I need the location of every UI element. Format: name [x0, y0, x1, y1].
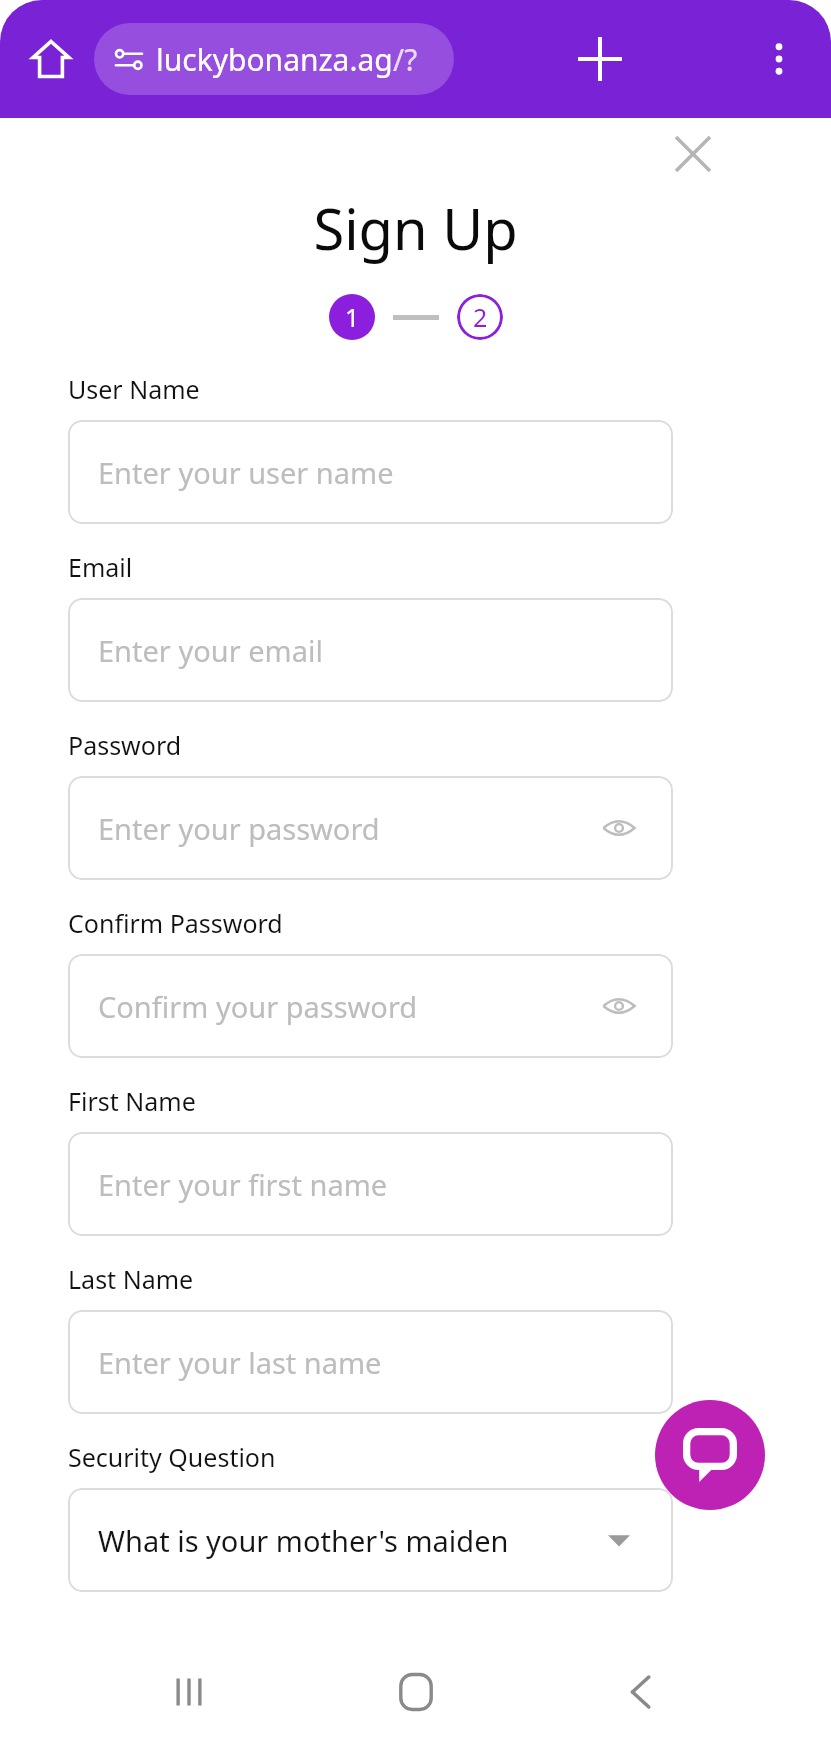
- button[interactable]: Home: [20, 28, 82, 90]
- staticText: Security Question: [68, 1440, 276, 1474]
- button[interactable]: Recents: [152, 1655, 226, 1729]
- staticText: Enter your user name: [98, 453, 394, 492]
- staticText: First Name: [68, 1084, 196, 1118]
- staticText: Email: [68, 550, 133, 584]
- button[interactable]: Enter your first name: [68, 1132, 673, 1236]
- staticText: 1: [345, 300, 360, 334]
- staticText: Confirm your password: [98, 987, 418, 1026]
- button[interactable]: Close: [665, 126, 721, 182]
- button[interactable]: Enter your password: [68, 776, 673, 880]
- button[interactable]: What is your mother's maiden name?: [68, 1488, 673, 1592]
- staticText: Password: [68, 728, 182, 762]
- button[interactable]: Show password: [595, 804, 643, 852]
- staticText: Enter your email: [98, 631, 323, 670]
- button[interactable]: luckybonanza.ag: [94, 23, 454, 95]
- button[interactable]: Enter your email: [68, 598, 673, 702]
- staticText: Enter your last name: [98, 1343, 382, 1382]
- button[interactable]: Home: [379, 1655, 453, 1729]
- staticText: Enter your password: [98, 809, 380, 848]
- staticText: Confirm Password: [68, 906, 283, 940]
- button[interactable]: Enter your last name: [68, 1310, 673, 1414]
- staticText: Enter your first name: [98, 1165, 388, 1204]
- button[interactable]: Back: [605, 1655, 679, 1729]
- button[interactable]: Show password: [595, 982, 643, 1030]
- staticText: /?id: [393, 39, 440, 80]
- button[interactable]: Enter your user name: [68, 420, 673, 524]
- staticText: luckybonanza.ag: [156, 39, 393, 80]
- button[interactable]: New tab: [568, 27, 632, 91]
- button[interactable]: 1: [329, 294, 375, 340]
- button[interactable]: 2: [457, 294, 503, 340]
- staticText: Sign Up: [0, 190, 831, 266]
- button[interactable]: Open chat: [655, 1400, 765, 1510]
- staticText: 2: [473, 300, 488, 334]
- staticText: What is your mother's maiden name?: [98, 1521, 585, 1560]
- button[interactable]: Confirm your password: [68, 954, 673, 1058]
- button[interactable]: Open dropdown: [595, 1516, 643, 1564]
- staticText: User Name: [68, 372, 200, 406]
- staticText: Last Name: [68, 1262, 194, 1296]
- button[interactable]: More options: [747, 27, 811, 91]
